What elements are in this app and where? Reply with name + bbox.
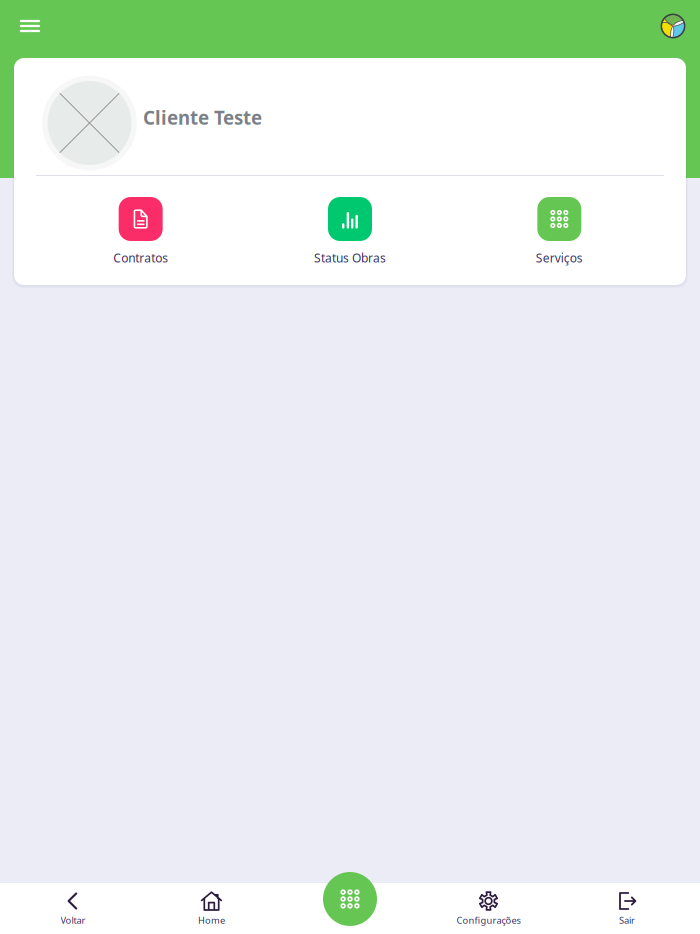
button[interactable]: Home (142, 883, 281, 934)
button[interactable]: Sair (558, 883, 696, 934)
button[interactable]: Voltar (4, 883, 142, 934)
button[interactable]: Configurações (419, 883, 558, 934)
staticText: Voltar (60, 914, 85, 926)
button[interactable]: Serviços (323, 872, 377, 926)
button[interactable]: Serviços (455, 197, 664, 266)
staticText: Configurações (456, 914, 520, 926)
button[interactable]: Menu (15, 11, 45, 41)
button[interactable]: Contratos (36, 197, 245, 266)
staticText: Status Obras (314, 250, 386, 266)
button[interactable]: Status Obras (245, 197, 455, 266)
staticText: Serviços (536, 250, 583, 266)
staticText: Contratos (113, 250, 168, 266)
staticText: Home (198, 914, 225, 926)
button[interactable]: Logotipo (661, 14, 685, 38)
staticText: Sair (619, 914, 635, 926)
staticText: Cliente Teste (143, 105, 262, 130)
